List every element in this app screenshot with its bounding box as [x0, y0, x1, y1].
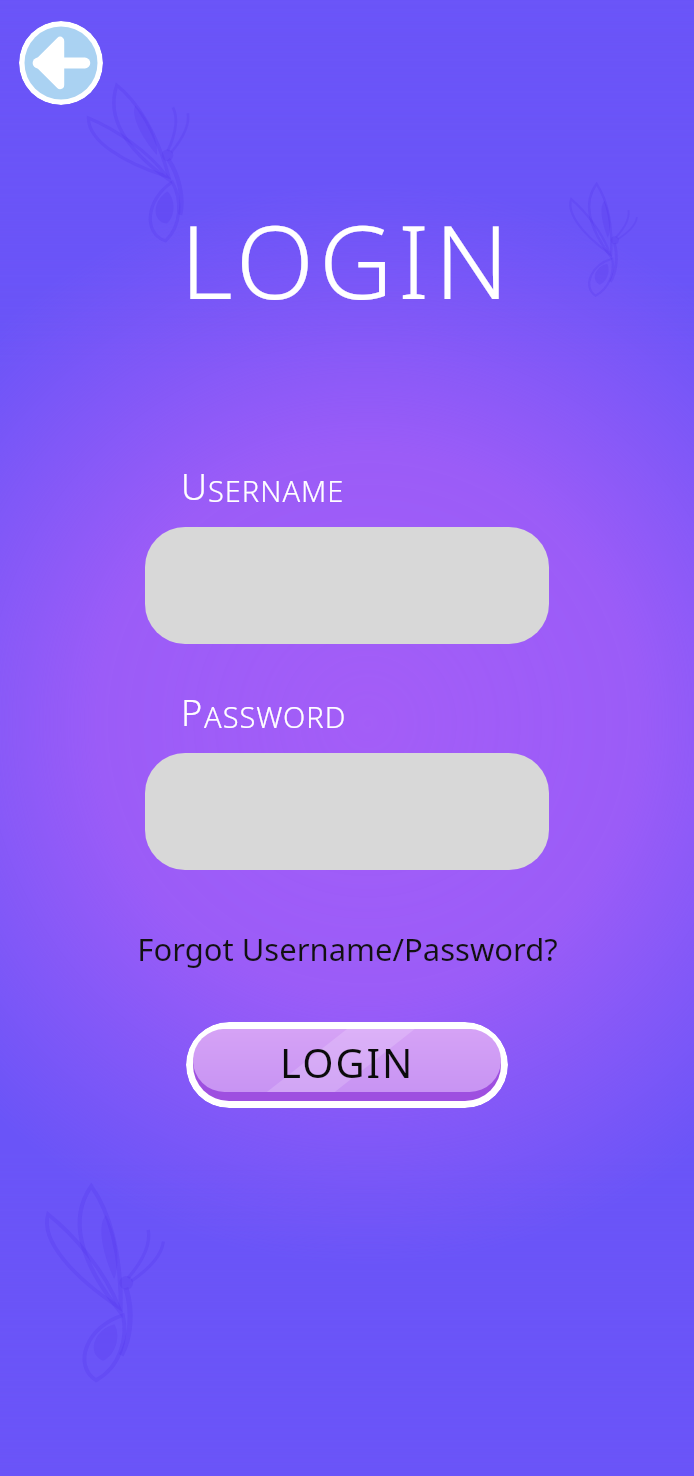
- staticText: SERNAME: [208, 471, 345, 510]
- button[interactable]: Forgot Username/Password?: [131, 926, 564, 972]
- staticText: U: [181, 462, 208, 511]
- staticText: LOGIN: [0, 190, 694, 329]
- staticText: P: [181, 688, 204, 737]
- staticText: ASSWORD: [204, 697, 347, 736]
- button[interactable]: Back: [19, 21, 103, 105]
- staticText: LOGIN: [280, 1035, 415, 1089]
- button[interactable]: Text field: [145, 753, 549, 870]
- button[interactable]: LOGIN: [186, 1022, 508, 1108]
- button[interactable]: Text field: [145, 527, 549, 644]
- staticText: Forgot Username/Password?: [137, 928, 558, 970]
